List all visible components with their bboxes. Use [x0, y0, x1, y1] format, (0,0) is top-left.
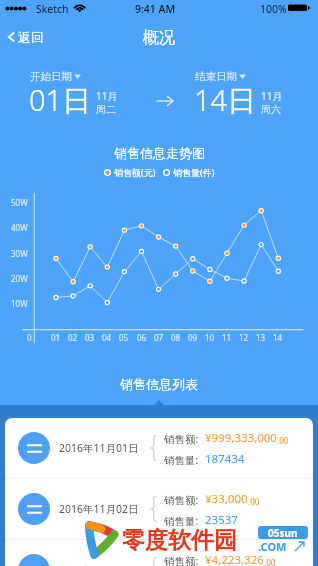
staticText: 100%: [260, 2, 287, 16]
staticText: ¥33,000: [205, 491, 248, 507]
staticText: 2016年11月02日: [59, 502, 139, 516]
staticText: 12: [239, 332, 249, 343]
button[interactable]: 2016年11月01日: [5, 418, 313, 478]
staticText: 9:41 AM: [135, 2, 176, 16]
staticText: 05sun: [268, 526, 298, 539]
staticText: 14: [273, 332, 283, 343]
staticText: 14日: [194, 80, 257, 120]
staticText: .COM: [258, 539, 287, 554]
staticText: .00: [264, 557, 276, 566]
staticText: ¥999,333,000: [205, 430, 277, 446]
staticText: 04: [102, 332, 112, 343]
staticText: Sketch: [36, 2, 69, 16]
button[interactable]: 返回: [5, 27, 46, 47]
staticText: 返回: [18, 29, 44, 45]
staticText: 05: [119, 332, 129, 343]
staticText: 销售量(件): [173, 166, 215, 178]
button[interactable]: 2016年11月03日: [5, 540, 313, 566]
staticText: 概况: [143, 28, 175, 48]
staticText: 销售额:: [164, 554, 199, 566]
button[interactable]: 开始日期: [28, 68, 83, 85]
staticText: 09: [188, 332, 198, 343]
staticText: 23537: [205, 512, 238, 528]
staticText: 开始日期: [30, 70, 72, 83]
staticText: 销售量:: [164, 453, 199, 467]
staticText: 11月: [261, 89, 283, 103]
staticText: .00: [248, 496, 260, 507]
staticText: 13: [256, 332, 266, 343]
staticText: 周六: [261, 103, 281, 116]
staticText: 销售额:: [164, 432, 199, 446]
staticText: 结束日期: [195, 70, 237, 83]
staticText: 01日: [29, 80, 92, 120]
staticText: 20W: [11, 273, 28, 284]
staticText: 销售额:: [164, 493, 199, 507]
staticText: 销售信息列表: [120, 376, 198, 392]
button[interactable]: 2016年11月02日: [5, 479, 313, 539]
staticText: .00: [277, 435, 289, 446]
staticText: ¥4,223,326: [205, 552, 264, 566]
staticText: 11月: [96, 89, 118, 103]
staticText: 03: [85, 332, 95, 343]
staticText: 40W: [11, 222, 28, 233]
staticText: 187434: [205, 451, 245, 467]
staticText: 10W: [11, 298, 28, 309]
staticText: 2016年11月01日: [59, 441, 139, 455]
staticText: 周二: [96, 103, 116, 116]
staticText: 零度软件园: [122, 526, 237, 555]
staticText: 01: [51, 332, 61, 343]
staticText: 11: [222, 332, 232, 343]
staticText: 10: [205, 332, 215, 343]
staticText: 08: [171, 332, 181, 343]
button[interactable]: 结束日期: [193, 68, 248, 85]
staticText: 销售额(元): [114, 166, 156, 178]
staticText: 30W: [11, 248, 28, 259]
staticText: 06: [137, 332, 147, 343]
staticText: 02: [68, 332, 78, 343]
staticText: 销售量:: [164, 514, 199, 528]
staticText: 销售信息走势图: [114, 145, 205, 161]
staticText: 50W: [11, 197, 28, 208]
staticText: 07: [154, 332, 164, 343]
staticText: 0: [27, 332, 32, 343]
